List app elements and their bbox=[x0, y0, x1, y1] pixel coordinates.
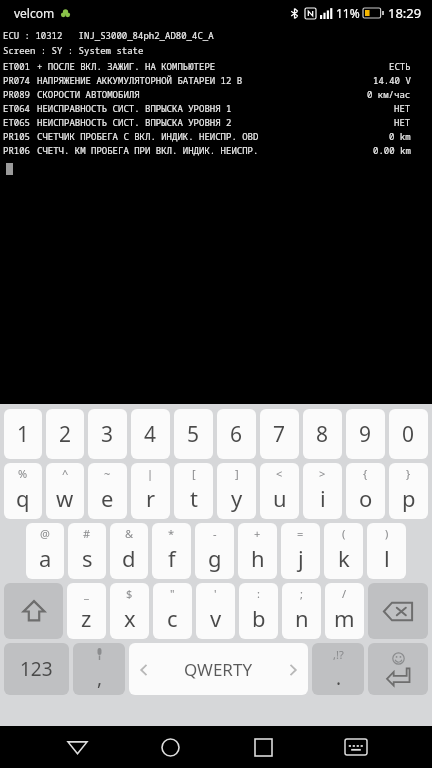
staticText: " bbox=[170, 586, 175, 601]
staticText: ) bbox=[385, 526, 389, 541]
staticText: h bbox=[251, 543, 265, 573]
button[interactable]: # bbox=[68, 523, 106, 579]
button[interactable]: 3 bbox=[88, 409, 127, 459]
staticText: { bbox=[363, 466, 368, 481]
button[interactable]: 2 bbox=[46, 409, 84, 459]
staticText: _ bbox=[84, 586, 89, 601]
staticText: m bbox=[334, 603, 355, 633]
staticText: 4 bbox=[144, 420, 157, 449]
staticText: , bbox=[97, 665, 103, 691]
button[interactable]: Home bbox=[144, 726, 196, 768]
staticText: ECU : 10312 INJ_S3000_84ph2_AD80_4C_A bbox=[3, 29, 214, 41]
staticText: w bbox=[56, 483, 74, 513]
button[interactable]: ^ bbox=[46, 463, 84, 519]
button[interactable]: = bbox=[281, 523, 320, 579]
button[interactable]: % bbox=[4, 463, 42, 519]
staticText: k bbox=[338, 543, 350, 573]
button[interactable]: Enter bbox=[368, 643, 428, 695]
staticText: o bbox=[359, 483, 373, 513]
staticText: СКОРОСТИ АВТОМОБИЛЯ bbox=[37, 88, 140, 100]
button[interactable]: : bbox=[239, 583, 278, 639]
button[interactable]: Comma bbox=[73, 643, 125, 695]
button[interactable]: < bbox=[260, 463, 299, 519]
staticText: 14.40 V bbox=[373, 74, 411, 86]
staticText: 18:29 bbox=[388, 4, 422, 22]
button[interactable]: $ bbox=[110, 583, 149, 639]
button[interactable]: * bbox=[152, 523, 191, 579]
button[interactable]: - bbox=[195, 523, 234, 579]
staticText: * bbox=[168, 526, 175, 541]
button[interactable]: Recents bbox=[237, 726, 289, 768]
button[interactable]: Shift bbox=[4, 583, 63, 639]
staticText: a bbox=[39, 543, 52, 573]
staticText: 0.00 km bbox=[373, 144, 411, 156]
button[interactable]: _ bbox=[67, 583, 106, 639]
staticText: ET065 bbox=[3, 116, 31, 128]
button[interactable]: 6 bbox=[217, 409, 256, 459]
staticText: ^ bbox=[62, 466, 69, 481]
staticText: z bbox=[81, 603, 92, 633]
staticText: 8 bbox=[316, 420, 329, 449]
staticText: НЕИСПРАВНОСТЬ СИСТ. ВПРЫСКА УРОВНЯ 1 bbox=[37, 102, 232, 114]
button[interactable]: 123 bbox=[4, 643, 69, 695]
button[interactable]: + bbox=[238, 523, 277, 579]
staticText: 0 км/час bbox=[367, 88, 411, 100]
button[interactable]: 0 bbox=[389, 409, 428, 459]
staticText: НЕИСПРАВНОСТЬ СИСТ. ВПРЫСКА УРОВНЯ 2 bbox=[37, 116, 232, 128]
button[interactable]: ) bbox=[367, 523, 406, 579]
staticText: 0 km bbox=[389, 130, 411, 142]
staticText: 123 bbox=[20, 656, 53, 682]
staticText: 7 bbox=[273, 420, 286, 449]
button[interactable]: ~ bbox=[88, 463, 127, 519]
staticText: > bbox=[319, 466, 326, 481]
button[interactable]: 9 bbox=[346, 409, 385, 459]
staticText: 3 bbox=[101, 420, 114, 449]
button[interactable]: Back bbox=[51, 726, 103, 768]
staticText: b bbox=[252, 603, 266, 633]
staticText: + bbox=[254, 526, 261, 541]
button[interactable]: ; bbox=[282, 583, 321, 639]
button[interactable]: Period bbox=[312, 643, 364, 695]
staticText: 0 bbox=[402, 420, 415, 449]
staticText: НАПРЯЖЕНИЕ АККУМУЛЯТОРНОЙ БАТАРЕИ 12 В bbox=[37, 74, 243, 86]
staticText: r bbox=[146, 483, 156, 513]
button[interactable]: ] bbox=[217, 463, 256, 519]
staticText: j bbox=[298, 543, 304, 573]
button[interactable]: @ bbox=[26, 523, 64, 579]
staticText: 6 bbox=[230, 420, 243, 449]
button[interactable]: / bbox=[325, 583, 364, 639]
staticText: } bbox=[406, 466, 411, 481]
staticText: y bbox=[231, 483, 243, 513]
staticText: 5 bbox=[187, 420, 200, 449]
staticText: PR106 bbox=[3, 144, 31, 156]
staticText: s bbox=[82, 543, 93, 573]
staticText: PR089 bbox=[3, 88, 31, 100]
button[interactable]: " bbox=[153, 583, 192, 639]
button[interactable]: 5 bbox=[174, 409, 213, 459]
button[interactable]: 4 bbox=[131, 409, 170, 459]
button[interactable]: Backspace bbox=[368, 583, 428, 639]
staticText: ET064 bbox=[3, 102, 31, 114]
staticText: 11% bbox=[336, 5, 360, 21]
button[interactable]: { bbox=[346, 463, 385, 519]
button[interactable]: | bbox=[131, 463, 170, 519]
staticText: @ bbox=[40, 526, 50, 541]
button[interactable]: 7 bbox=[260, 409, 299, 459]
staticText: i bbox=[320, 483, 326, 513]
staticText: : bbox=[257, 586, 260, 601]
button[interactable]: 1 bbox=[4, 409, 42, 459]
button[interactable]: ( bbox=[324, 523, 363, 579]
button[interactable]: Hide keyboard bbox=[330, 726, 382, 768]
button[interactable]: Space bbox=[129, 643, 308, 695]
staticText: ( bbox=[342, 526, 346, 541]
button[interactable]: 8 bbox=[303, 409, 342, 459]
button[interactable]: ' bbox=[196, 583, 235, 639]
staticText: | bbox=[147, 466, 154, 481]
staticText: Screen : SY : System state bbox=[3, 44, 144, 56]
button[interactable]: > bbox=[303, 463, 342, 519]
button[interactable]: & bbox=[110, 523, 148, 579]
staticText: НЕТ bbox=[394, 116, 411, 128]
button[interactable]: [ bbox=[174, 463, 213, 519]
staticText: ; bbox=[300, 586, 303, 601]
button[interactable]: } bbox=[389, 463, 428, 519]
